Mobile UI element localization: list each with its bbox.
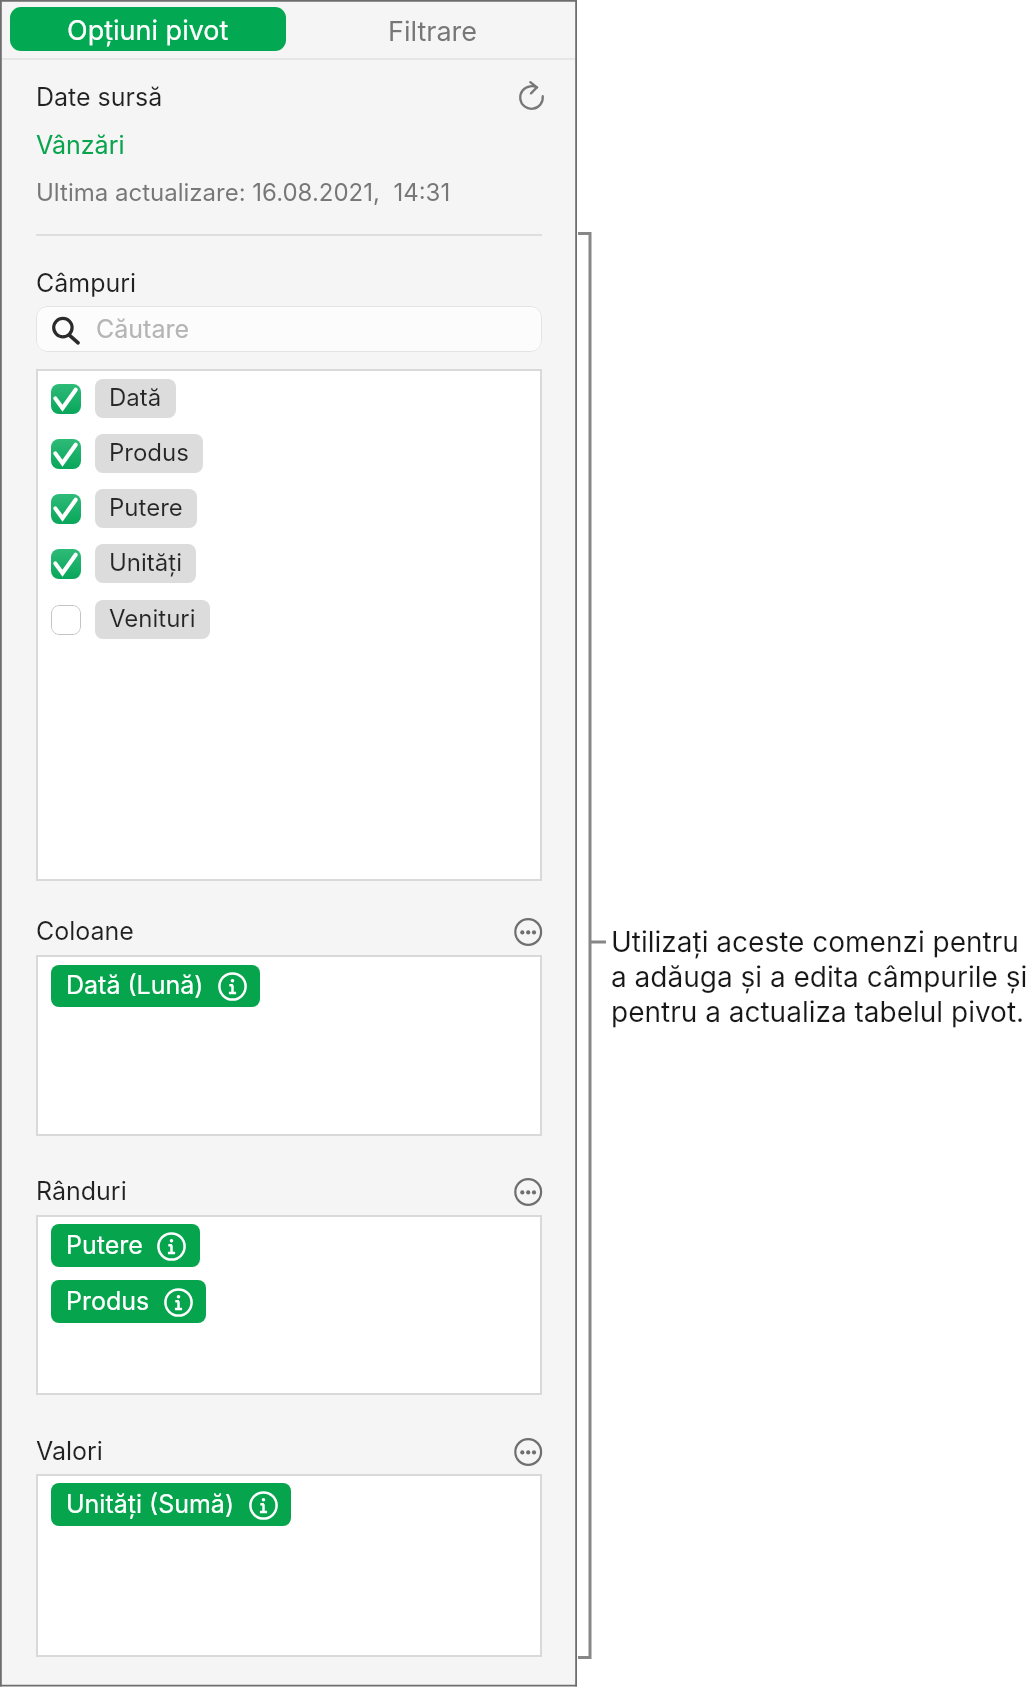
- button[interactable]: Căutare: [36, 306, 542, 352]
- staticText: Unități (Sumă): [66, 1489, 235, 1519]
- button[interactable]: Produs: [51, 1280, 206, 1323]
- button[interactable]: Produs: [51, 434, 203, 473]
- button[interactable]: Venituri: [51, 600, 210, 639]
- staticText: Rânduri: [36, 1176, 127, 1206]
- staticText: Putere: [109, 493, 183, 522]
- button[interactable]: Opțiuni pivot: [10, 7, 286, 51]
- staticText: Opțiuni pivot: [67, 14, 229, 47]
- button[interactable]: Mai multe opțiuni: [512, 1176, 544, 1208]
- button[interactable]: Putere: [51, 1224, 200, 1267]
- button[interactable]: Vânzări: [36, 130, 125, 160]
- staticText: Date sursă: [36, 82, 163, 112]
- button[interactable]: Dată (Lună): [51, 965, 260, 1007]
- button[interactable]: Filtrare: [330, 7, 535, 51]
- staticText: Putere: [66, 1230, 143, 1260]
- staticText: Venituri: [109, 604, 196, 633]
- button[interactable]: Putere: [51, 489, 197, 528]
- button[interactable]: Unități (Sumă): [51, 1483, 291, 1526]
- staticText: Valori: [36, 1436, 103, 1466]
- staticText: Dată (Lună): [66, 970, 204, 1000]
- staticText: Ultima actualizare: 16.08.2021, 14:31: [36, 178, 451, 207]
- staticText: Utilizați aceste comenzi pentru a adăuga…: [611, 925, 1035, 1029]
- button[interactable]: Unități: [51, 544, 196, 583]
- button[interactable]: Mai multe opțiuni: [512, 1436, 544, 1468]
- staticText: Dată: [109, 383, 162, 412]
- staticText: Unități: [109, 548, 182, 577]
- staticText: Produs: [66, 1286, 150, 1316]
- staticText: Coloane: [36, 916, 134, 946]
- staticText: Produs: [109, 438, 189, 467]
- button[interactable]: Dată: [51, 379, 176, 418]
- staticText: Căutare: [96, 314, 189, 344]
- button[interactable]: Mai multe opțiuni: [512, 916, 544, 948]
- button[interactable]: Reîmprospătare date: [512, 78, 552, 118]
- staticText: Filtrare: [388, 15, 478, 48]
- staticText: Câmpuri: [36, 268, 137, 298]
